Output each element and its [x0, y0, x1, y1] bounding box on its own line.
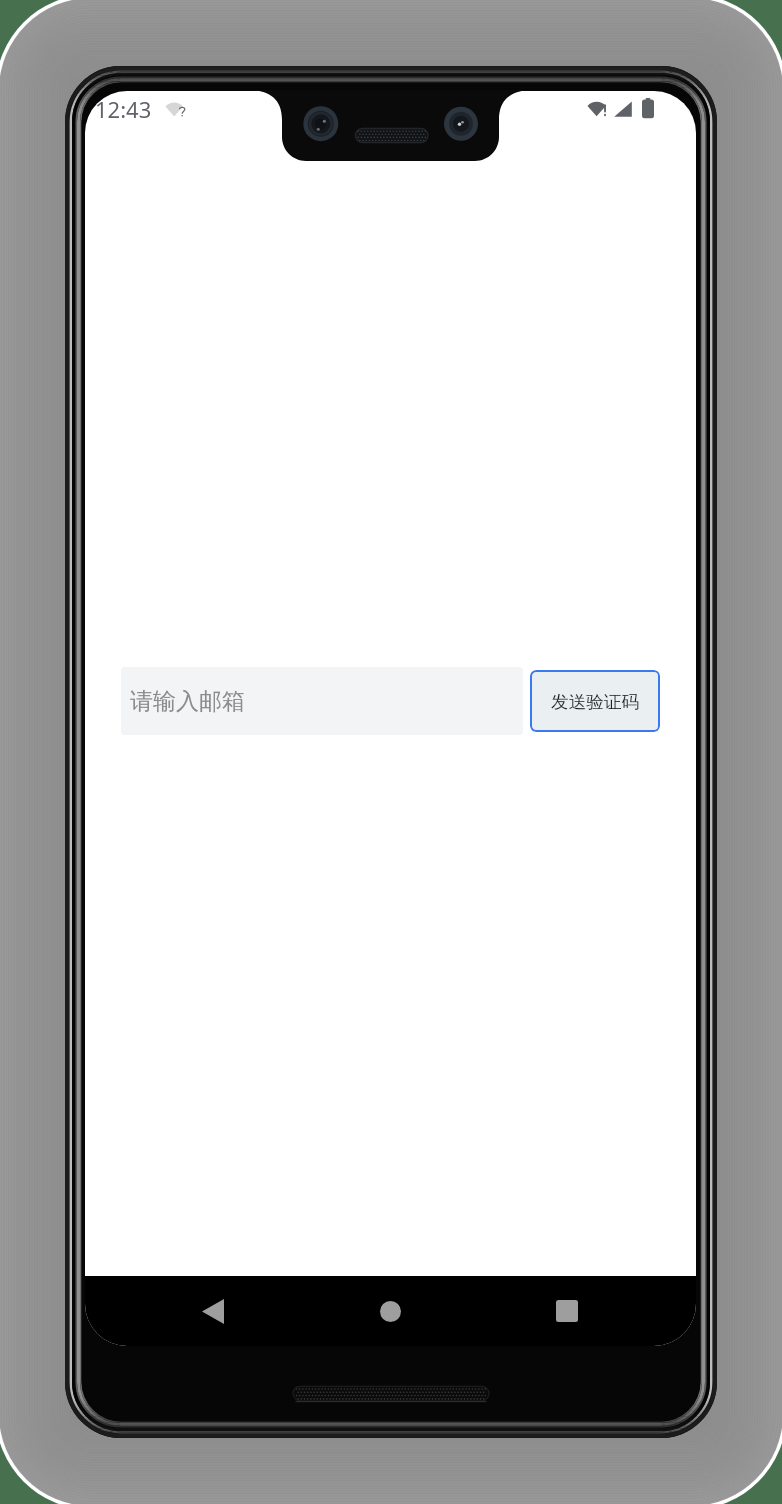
staticText: 发送验证码	[551, 691, 639, 713]
staticText: 12:43	[95, 94, 152, 124]
button[interactable]: Back	[190, 1276, 235, 1346]
button[interactable]: 发送验证码	[530, 670, 660, 732]
staticText: 请输入邮箱	[130, 687, 245, 716]
button[interactable]: 请输入邮箱	[121, 667, 523, 735]
button[interactable]: Home	[368, 1276, 413, 1346]
button[interactable]: Recents	[544, 1276, 589, 1346]
